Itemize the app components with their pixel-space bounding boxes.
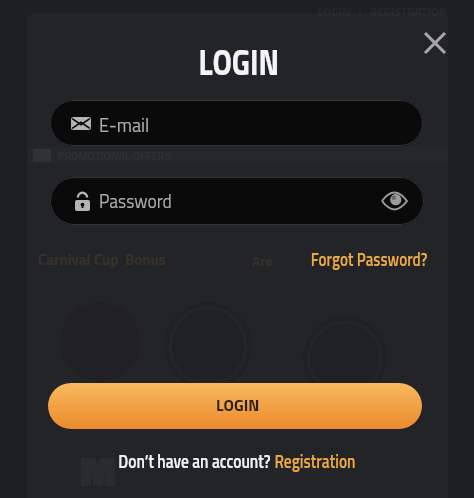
button[interactable]: LOGIN (48, 383, 422, 429)
staticText: LOGIN (198, 34, 279, 89)
button[interactable]: Password (50, 177, 424, 225)
button[interactable] (380, 177, 424, 225)
staticText: Don’t have an account? (118, 446, 274, 475)
staticText: Are (252, 250, 273, 271)
staticText: Carnival Cup Bonus (38, 248, 166, 271)
button[interactable]: E-mail (50, 100, 423, 146)
staticText: LOGIN | REGISTRATION (318, 2, 448, 20)
staticText: M (80, 438, 116, 498)
staticText: LOGIN (216, 393, 260, 417)
button[interactable]: Registration (274, 446, 356, 475)
staticText: E-mail (99, 110, 150, 139)
staticText: PROMOTIONAL OFFERS (58, 148, 171, 165)
staticText: Password (99, 186, 173, 215)
button[interactable] (417, 25, 453, 61)
button[interactable]: Forgot Password? (311, 244, 428, 273)
